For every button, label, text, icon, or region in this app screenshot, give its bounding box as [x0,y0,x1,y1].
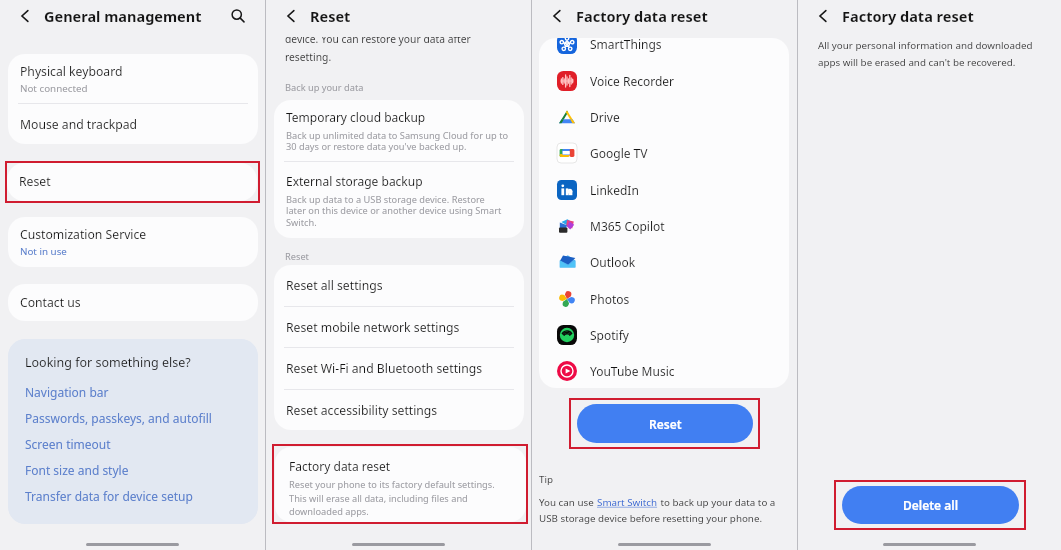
staticText: Reset [19,173,51,190]
staticText: Photos [590,291,630,307]
staticText: Factory data reset [576,6,708,26]
staticText: Spotify [590,327,629,343]
button[interactable]: Temporary cloud backup [274,100,509,161]
button[interactable]: Screen timeout [25,431,258,457]
staticText: Temporary cloud backup [286,109,426,125]
staticText: Not in use [20,245,67,258]
button[interactable]: Contact us [8,284,258,321]
staticText: Physical keyboard [20,63,123,80]
staticText: Navigation bar [25,384,109,400]
staticText: Reset [310,6,351,26]
button[interactable]: Font size and style [25,457,258,483]
button[interactable]: LinkedIn [539,172,789,208]
button[interactable]: Physical keyboard [8,54,258,103]
button[interactable]: Search [227,5,249,27]
button[interactable]: Mouse and trackpad [8,104,258,144]
staticText: External storage backup [286,173,423,189]
staticText: Drive [590,109,620,125]
staticText: Back up your data [285,81,364,94]
staticText: to back up your data to a [658,496,776,509]
staticText: YouTube Music [590,363,675,379]
staticText: Reset accessibility settings [286,402,438,419]
staticText: Customization Service [20,226,147,243]
button[interactable]: Photos [539,281,789,317]
staticText: apps will be erased and can't be recover… [818,56,1016,69]
button[interactable]: Passwords, passkeys, and autofill [25,405,258,431]
staticText: SmartThings [590,38,662,52]
button[interactable]: Transfer data for device setup [25,483,258,509]
staticText: Passwords, passkeys, and autofill [25,410,212,426]
staticText: Reset [285,250,309,263]
staticText: General management [44,6,202,26]
button[interactable]: Reset [577,404,753,443]
button[interactable]: Drive [539,99,789,135]
staticText: LinkedIn [590,182,639,198]
button[interactable]: Reset [7,163,257,200]
button[interactable]: Reset Wi-Fi and Bluetooth settings [274,348,524,389]
button[interactable]: Voice Recorder [539,63,789,99]
staticText: Reset [649,416,682,432]
staticText: Reset your phone to its factory default … [289,478,501,517]
button[interactable]: M365 Copilot [539,208,789,244]
staticText: Screen timeout [25,436,111,452]
staticText: Google TV [590,145,648,161]
staticText: Back up data to a USB storage device. Re… [286,193,505,229]
staticText: Factory data reset [289,458,391,474]
staticText: device. You can restore your data after [285,32,471,46]
staticText: Not connected [20,82,88,95]
button[interactable]: External storage backup [274,162,505,238]
button[interactable]: Reset all settings [274,265,524,306]
button[interactable]: Spotify [539,317,789,353]
button[interactable]: Back [14,5,36,27]
button[interactable]: Navigation bar [25,379,258,405]
staticText: Delete all [903,497,959,513]
button[interactable]: Delete all [842,486,1019,524]
staticText: All your personal information and downlo… [818,39,1033,52]
button[interactable]: Factory data reset [275,447,526,522]
button[interactable]: Outlook [539,244,789,280]
button[interactable]: Reset accessibility settings [274,390,524,430]
button[interactable]: Back [812,5,834,27]
staticText: Voice Recorder [590,73,675,89]
staticText: Contact us [20,294,81,311]
staticText: Back up unlimited data to Samsung Cloud … [286,129,509,153]
button[interactable]: Reset mobile network settings [274,307,524,347]
staticText: You can use [539,496,597,509]
staticText: Tip [539,473,553,486]
button[interactable]: SmartThings [539,38,789,62]
staticText: Reset mobile network settings [286,319,460,336]
button[interactable]: YouTube Music [539,353,789,388]
button[interactable]: Smart Switch [597,496,658,509]
button[interactable]: Back [546,5,568,27]
button[interactable]: Back [280,5,302,27]
staticText: Reset all settings [286,277,383,294]
staticText: USB storage device before resetting your… [539,512,763,525]
button[interactable]: Google TV [539,135,789,171]
staticText: Mouse and trackpad [20,116,138,133]
staticText: Font size and style [25,462,129,478]
staticText: Factory data reset [842,6,974,26]
button[interactable]: Customization Service [8,217,258,267]
staticText: Looking for something else? [25,354,191,371]
staticText: Reset Wi-Fi and Bluetooth settings [286,360,483,377]
staticText: Transfer data for device setup [25,488,193,504]
staticText: resetting. [285,50,332,64]
staticText: Outlook [590,254,636,270]
staticText: M365 Copilot [590,218,665,234]
